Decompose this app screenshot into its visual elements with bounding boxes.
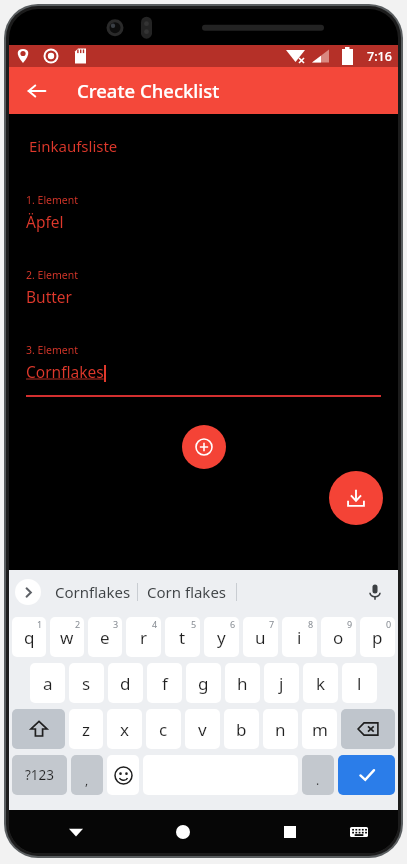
- staticText: o: [333, 626, 344, 649]
- button[interactable]: a: [30, 663, 65, 703]
- button[interactable]: Add item: [182, 425, 226, 469]
- button[interactable]: m: [302, 709, 337, 749]
- button[interactable]: Switch keyboard: [339, 812, 379, 852]
- staticText: w: [60, 626, 74, 649]
- staticText: z: [82, 718, 90, 741]
- staticText: p: [372, 626, 383, 649]
- button[interactable]: e: [88, 617, 122, 657]
- staticText: c: [159, 718, 168, 741]
- staticText: h: [237, 672, 248, 695]
- button[interactable]: i: [282, 617, 317, 657]
- button[interactable]: Back: [56, 812, 96, 852]
- button[interactable]: r: [126, 617, 161, 657]
- button[interactable]: Enter: [338, 755, 395, 795]
- staticText: 2. Element: [26, 268, 79, 282]
- button[interactable]: Recents: [270, 812, 310, 852]
- button[interactable]: p: [360, 617, 395, 657]
- staticText: 6: [230, 618, 236, 630]
- button[interactable]: y: [204, 617, 239, 657]
- button[interactable]: t: [165, 617, 200, 657]
- button[interactable]: .: [302, 755, 334, 795]
- staticText: r: [140, 626, 148, 649]
- button[interactable]: Home: [163, 812, 203, 852]
- button[interactable]: Cornflakes: [49, 582, 137, 602]
- staticText: l: [357, 672, 362, 695]
- button[interactable]: Voice input: [360, 577, 390, 607]
- button[interactable]: w: [50, 617, 84, 657]
- staticText: n: [275, 718, 286, 741]
- staticText: u: [255, 626, 266, 649]
- staticText: m: [312, 718, 328, 741]
- staticText: k: [316, 672, 326, 695]
- staticText: Einkaufsliste: [29, 136, 118, 156]
- button[interactable]: Corn flakes: [138, 582, 236, 602]
- button[interactable]: x: [107, 709, 142, 749]
- button[interactable]: c: [146, 709, 181, 749]
- staticText: 7: [269, 618, 275, 630]
- button[interactable]: z: [69, 709, 103, 749]
- button[interactable]: j: [264, 663, 299, 703]
- button[interactable]: d: [108, 663, 143, 703]
- staticText: .: [316, 772, 320, 788]
- staticText: 1. Element: [26, 193, 79, 207]
- staticText: a: [43, 672, 53, 695]
- staticText: Butter: [26, 286, 72, 307]
- button[interactable]: n: [263, 709, 298, 749]
- staticText: 3: [113, 618, 119, 630]
- button[interactable]: Shift: [12, 709, 65, 749]
- button[interactable]: u: [243, 617, 278, 657]
- staticText: b: [236, 718, 247, 741]
- button[interactable]: o: [321, 617, 356, 657]
- button[interactable]: v: [185, 709, 220, 749]
- button[interactable]: ,: [71, 755, 103, 795]
- staticText: Cornflakes: [26, 361, 104, 382]
- staticText: Äpfel: [26, 211, 64, 232]
- staticText: t: [179, 626, 186, 649]
- staticText: 4: [152, 618, 158, 630]
- staticText: 5: [191, 618, 197, 630]
- button[interactable]: q: [12, 617, 46, 657]
- staticText: 7:16: [367, 48, 392, 65]
- button[interactable]: g: [186, 663, 221, 703]
- staticText: x: [120, 718, 129, 741]
- staticText: 0: [386, 618, 392, 630]
- staticText: y: [217, 626, 226, 649]
- staticText: f: [162, 672, 168, 695]
- button[interactable]: s: [69, 663, 104, 703]
- staticText: 9: [347, 618, 353, 630]
- button[interactable]: f: [147, 663, 182, 703]
- staticText: Corn flakes: [147, 582, 227, 602]
- staticText: 1: [37, 618, 43, 630]
- button[interactable]: h: [225, 663, 260, 703]
- staticText: v: [198, 718, 207, 741]
- staticText: i: [297, 626, 302, 649]
- staticText: 3. Element: [26, 343, 79, 357]
- button[interactable]: l: [342, 663, 377, 703]
- staticText: ,: [85, 772, 89, 788]
- button[interactable]: Back: [17, 71, 57, 111]
- staticText: Cornflakes: [55, 582, 131, 602]
- button[interactable]: Backspace: [341, 709, 395, 749]
- button[interactable]: Emoji: [107, 755, 139, 795]
- staticText: Create Checklist: [77, 78, 220, 103]
- staticText: j: [279, 672, 284, 695]
- button[interactable]: Save checklist: [329, 471, 383, 525]
- button[interactable]: b: [224, 709, 259, 749]
- staticText: ?123: [25, 766, 55, 784]
- button[interactable]: More suggestions: [15, 579, 41, 605]
- staticText: d: [120, 672, 131, 695]
- staticText: q: [24, 626, 35, 649]
- staticText: s: [82, 672, 91, 695]
- button[interactable]: k: [303, 663, 338, 703]
- staticText: g: [198, 672, 209, 695]
- staticText: 8: [308, 618, 314, 630]
- staticText: e: [100, 626, 110, 649]
- button[interactable]: ?123: [12, 755, 67, 795]
- staticText: 2: [75, 618, 81, 630]
